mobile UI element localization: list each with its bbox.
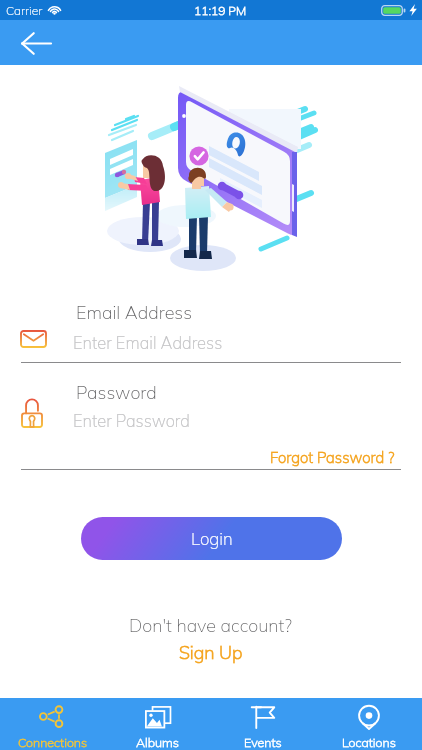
- button[interactable]: Back: [16, 23, 56, 63]
- staticText: Login: [191, 528, 233, 549]
- staticText: Forgot Password ?: [270, 448, 395, 467]
- staticText: Carrier: [6, 3, 43, 18]
- staticText: Sign Up: [179, 641, 243, 664]
- button[interactable]: Sign Up: [173, 639, 249, 666]
- staticText: Enter Password: [73, 410, 190, 431]
- button[interactable]: Login: [81, 517, 342, 560]
- staticText: Albums: [136, 734, 179, 750]
- button[interactable]: Events: [210, 698, 316, 750]
- staticText: Email Address: [76, 301, 193, 324]
- staticText: Locations: [342, 734, 396, 750]
- staticText: Events: [244, 734, 282, 750]
- staticText: Password: [76, 381, 157, 404]
- staticText: Don't have account?: [129, 614, 293, 637]
- button[interactable]: Albums: [105, 698, 210, 750]
- staticText: 11:19 PM: [194, 3, 247, 18]
- staticText: Connections: [18, 734, 88, 750]
- button[interactable]: Forgot Password ?: [266, 445, 399, 470]
- button[interactable]: Locations: [316, 698, 422, 750]
- staticText: Enter Email Address: [73, 332, 223, 353]
- button[interactable]: Connections: [0, 698, 105, 750]
